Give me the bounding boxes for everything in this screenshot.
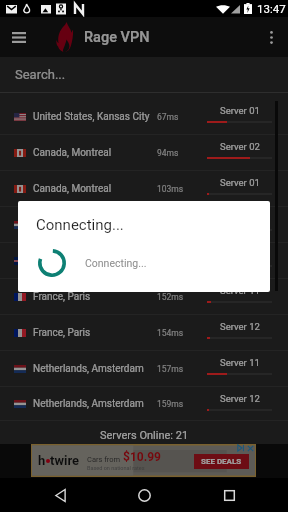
staticText: 103ms [157, 184, 184, 194]
button[interactable]: Recents [204, 478, 254, 512]
staticText: Canada, Montreal [33, 147, 112, 159]
staticText: Cars from [87, 455, 123, 464]
button[interactable]: Home [119, 478, 169, 512]
staticText: Connecting... [36, 216, 124, 234]
staticText: 94ms [157, 148, 179, 158]
button[interactable]: France, Paris [0, 315, 288, 351]
button[interactable]: Netherlands, Amsterdam [0, 351, 288, 387]
staticText: Netherlands, Amsterdam [33, 363, 144, 375]
button[interactable]: United States, Kansas City [0, 99, 288, 135]
staticText: Netherlands, Amsterdam [33, 219, 144, 231]
staticText: Server 12 [220, 321, 260, 332]
staticText: h [38, 453, 46, 468]
staticText: 152ms [157, 292, 184, 302]
button[interactable]: More options [254, 17, 288, 57]
button[interactable]: Canada, Montreal [0, 171, 288, 207]
staticText: United States, Kansas City [33, 111, 150, 123]
button[interactable]: Netherlands, Amsterdam [0, 387, 288, 421]
staticText: 67ms [157, 112, 179, 122]
staticText: Connecting... [85, 257, 147, 269]
staticText: Based on national rates [87, 465, 145, 471]
staticText: United Kingdom, London [33, 255, 143, 267]
button[interactable]: SEE DEALS [194, 454, 249, 469]
button[interactable]: Back [35, 478, 85, 512]
staticText: $10.99 [123, 450, 161, 464]
other: Close ad [247, 445, 254, 452]
staticText: France, Paris [33, 327, 91, 339]
button[interactable]: h [31, 444, 256, 477]
button[interactable]: Netherlands, Amsterdam [0, 207, 288, 243]
staticText: Server 02 [220, 141, 260, 152]
staticText: 154ms [157, 328, 184, 338]
staticText: Netherlands, Amsterdam [33, 398, 144, 410]
staticText: Server 11 [220, 285, 260, 296]
staticText: twire [50, 453, 80, 468]
staticText: Rage VPN [84, 29, 150, 46]
staticText: 157ms [157, 364, 184, 374]
staticText: Servers Online: 21 [100, 429, 189, 442]
button[interactable]: Search... [15, 57, 288, 92]
staticText: Server 11 [220, 357, 260, 368]
staticText: Server 01 [220, 177, 260, 188]
staticText: 159ms [157, 399, 184, 409]
staticText: France, Paris [33, 291, 91, 303]
staticText: Server 12 [220, 393, 260, 404]
button[interactable]: Canada, Montreal [0, 135, 288, 171]
staticText: SEE DEALS [201, 457, 242, 466]
button[interactable]: United Kingdom, London [0, 243, 288, 279]
staticText: Canada, Montreal [33, 183, 112, 195]
staticText: Search... [15, 67, 66, 82]
button[interactable]: France, Paris [0, 279, 288, 315]
button[interactable]: Menu [0, 17, 38, 57]
staticText: 13:47 [257, 2, 286, 15]
staticText: Server 01 [220, 105, 260, 116]
